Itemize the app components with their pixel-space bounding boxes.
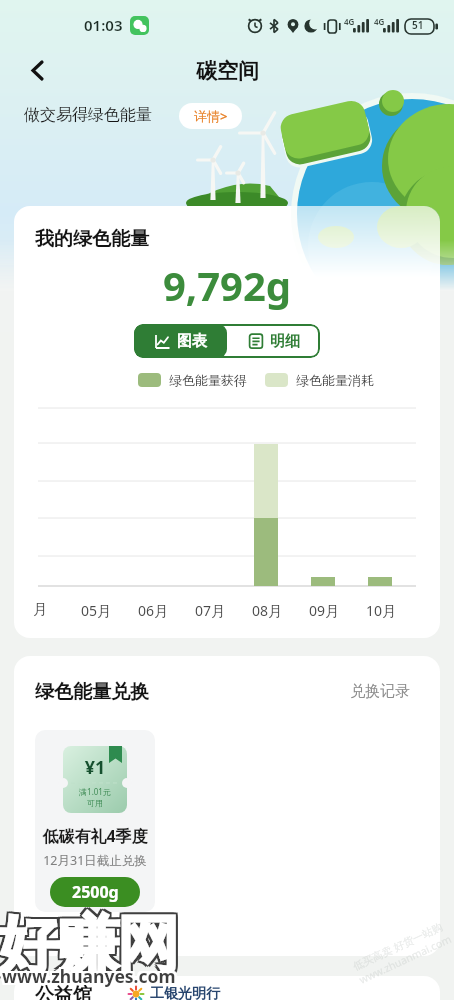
staticText: 好赚网 bbox=[0, 908, 180, 986]
staticText: 08月 bbox=[252, 601, 283, 620]
staticText: 好赚网 bbox=[0, 906, 178, 984]
staticText: 绿色能量消耗 bbox=[296, 372, 374, 388]
staticText: www.zhuanyes.com bbox=[2, 966, 176, 990]
button[interactable]: 兑换记录 bbox=[350, 682, 410, 701]
staticText: 满1.01元 bbox=[63, 786, 127, 797]
staticText: 低买高卖 好货一站购 www.zhuanmai.com bbox=[351, 918, 453, 987]
staticText: 绿色能量兑换 bbox=[35, 680, 149, 704]
staticText: 05月 bbox=[81, 601, 112, 620]
staticText: www.zhuanyes.com bbox=[4, 964, 178, 988]
staticText: 公益馆 bbox=[35, 983, 92, 1000]
button[interactable]: ¥1 bbox=[35, 730, 155, 912]
staticText: 2500g bbox=[72, 881, 119, 903]
staticText: 09月 bbox=[309, 601, 340, 620]
staticText: www.zhuanyes.com bbox=[4, 962, 178, 986]
staticText: www.zhuanyes.com bbox=[2, 964, 176, 988]
staticText: 9,792g bbox=[14, 258, 440, 312]
staticText: 明细 bbox=[270, 332, 300, 351]
staticText: 绿色能量获得 bbox=[169, 372, 247, 388]
staticText: 碳空间 bbox=[196, 58, 259, 84]
button[interactable] bbox=[28, 60, 48, 80]
staticText: 好赚网 bbox=[0, 904, 178, 982]
staticText: www.zhuanyes.com bbox=[4, 966, 178, 990]
staticText: 图表 bbox=[177, 332, 207, 351]
button[interactable]: 明细 bbox=[227, 324, 320, 358]
button[interactable]: 工银光明行 bbox=[127, 985, 220, 1000]
button[interactable]: 详情> bbox=[179, 103, 242, 129]
staticText: www.zhuanyes.com bbox=[0, 962, 174, 986]
staticText: www.zhuanyes.com bbox=[2, 962, 176, 986]
staticText: 好赚网 bbox=[0, 904, 180, 982]
button[interactable]: 图表 bbox=[134, 324, 227, 358]
staticText: www.zhuanyes.com bbox=[0, 966, 174, 990]
staticText: 好赚网 bbox=[0, 908, 178, 986]
staticText: 10月 bbox=[366, 601, 397, 620]
staticText: 4G bbox=[374, 16, 385, 27]
staticText: 4G bbox=[344, 16, 355, 27]
staticText: 月 bbox=[33, 601, 47, 619]
staticText: 51 bbox=[412, 18, 424, 32]
staticText: 低碳有礼4季度 bbox=[35, 825, 155, 847]
staticText: 好赚网 bbox=[0, 908, 176, 986]
staticText: ¥1 bbox=[63, 755, 127, 780]
staticText: 12月31日截止兑换 bbox=[35, 852, 155, 869]
staticText: 好赚网 bbox=[0, 906, 176, 984]
staticText: 做交易得绿色能量 bbox=[24, 105, 152, 125]
staticText: 可用 bbox=[63, 798, 127, 808]
staticText: 07月 bbox=[195, 601, 226, 620]
staticText: 06月 bbox=[138, 601, 169, 620]
staticText: www.zhuanyes.com bbox=[0, 964, 174, 988]
staticText: 详情> bbox=[194, 107, 228, 125]
staticText: 我的绿色能量 bbox=[35, 227, 149, 251]
button[interactable]: 2500g bbox=[50, 877, 140, 907]
staticText: 01:03 bbox=[84, 15, 123, 35]
staticText: 好赚网 bbox=[0, 904, 176, 982]
staticText: 工银光明行 bbox=[150, 985, 220, 1000]
staticText: 好赚网 bbox=[0, 906, 180, 984]
